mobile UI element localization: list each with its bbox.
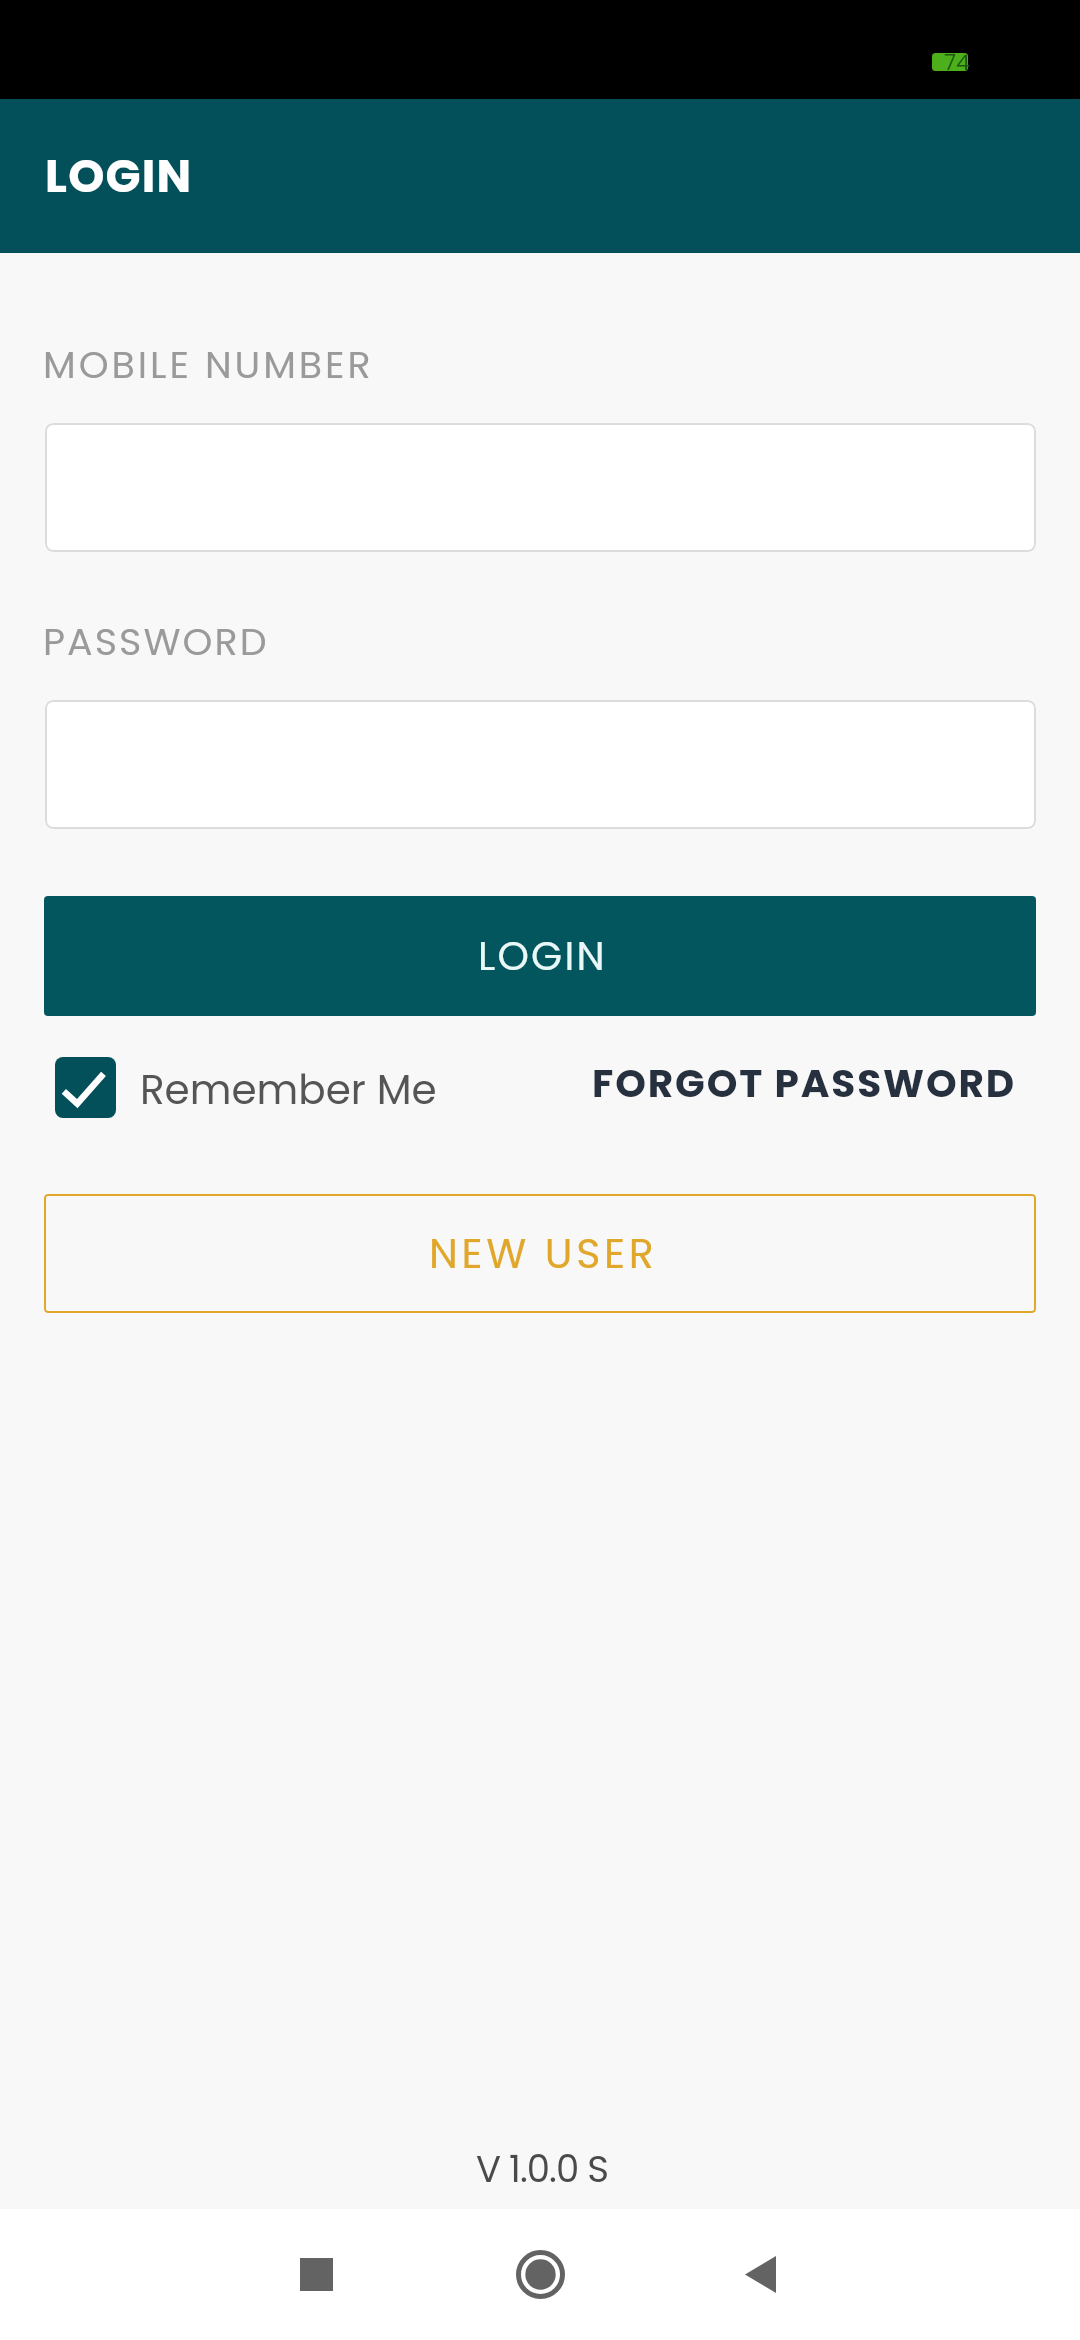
button[interactable]: Remember Me: [55, 1047, 437, 1128]
staticText: LOGIN: [478, 928, 607, 984]
button[interactable]: LOGIN: [44, 896, 1036, 1016]
button[interactable]: FORGOT PASSWORD: [572, 1042, 1037, 1123]
button[interactable]: [45, 423, 1036, 552]
staticText: LOGIN: [45, 144, 193, 208]
staticText: MOBILE NUMBER: [43, 338, 374, 391]
staticText: 74: [944, 47, 970, 78]
staticText: FORGOT PASSWORD: [592, 1056, 1017, 1111]
button[interactable]: [45, 700, 1036, 829]
button[interactable]: Home: [470, 2209, 610, 2340]
button[interactable]: NEW USER: [44, 1194, 1036, 1313]
staticText: Remember Me: [140, 1061, 437, 1118]
button[interactable]: Back: [690, 2209, 830, 2340]
staticText: V 1.0.0 S: [2, 2143, 1080, 2195]
staticText: PASSWORD: [43, 615, 269, 668]
staticText: NEW USER: [429, 1225, 658, 1282]
button[interactable]: Recent apps: [246, 2209, 386, 2340]
